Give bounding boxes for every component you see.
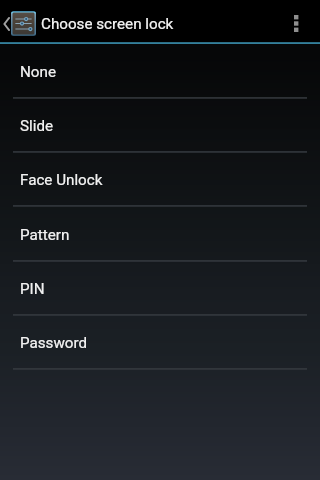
staticText: Face Unlock (20, 171, 103, 189)
button[interactable]: Face Unlock (0, 153, 320, 207)
staticText: Password (20, 334, 88, 352)
button[interactable]: None (0, 44, 320, 99)
staticText: Slide (20, 117, 54, 135)
staticText: Choose screen lock (41, 15, 174, 33)
button[interactable]: Navigate up (0, 6, 36, 41)
button[interactable]: More options (272, 6, 320, 41)
button[interactable]: Password (0, 316, 320, 370)
staticText: None (20, 63, 56, 81)
button[interactable]: Pattern (0, 207, 320, 262)
button[interactable]: PIN (0, 262, 320, 316)
staticText: Pattern (20, 226, 70, 244)
staticText: PIN (20, 280, 45, 298)
button[interactable]: Slide (0, 99, 320, 153)
